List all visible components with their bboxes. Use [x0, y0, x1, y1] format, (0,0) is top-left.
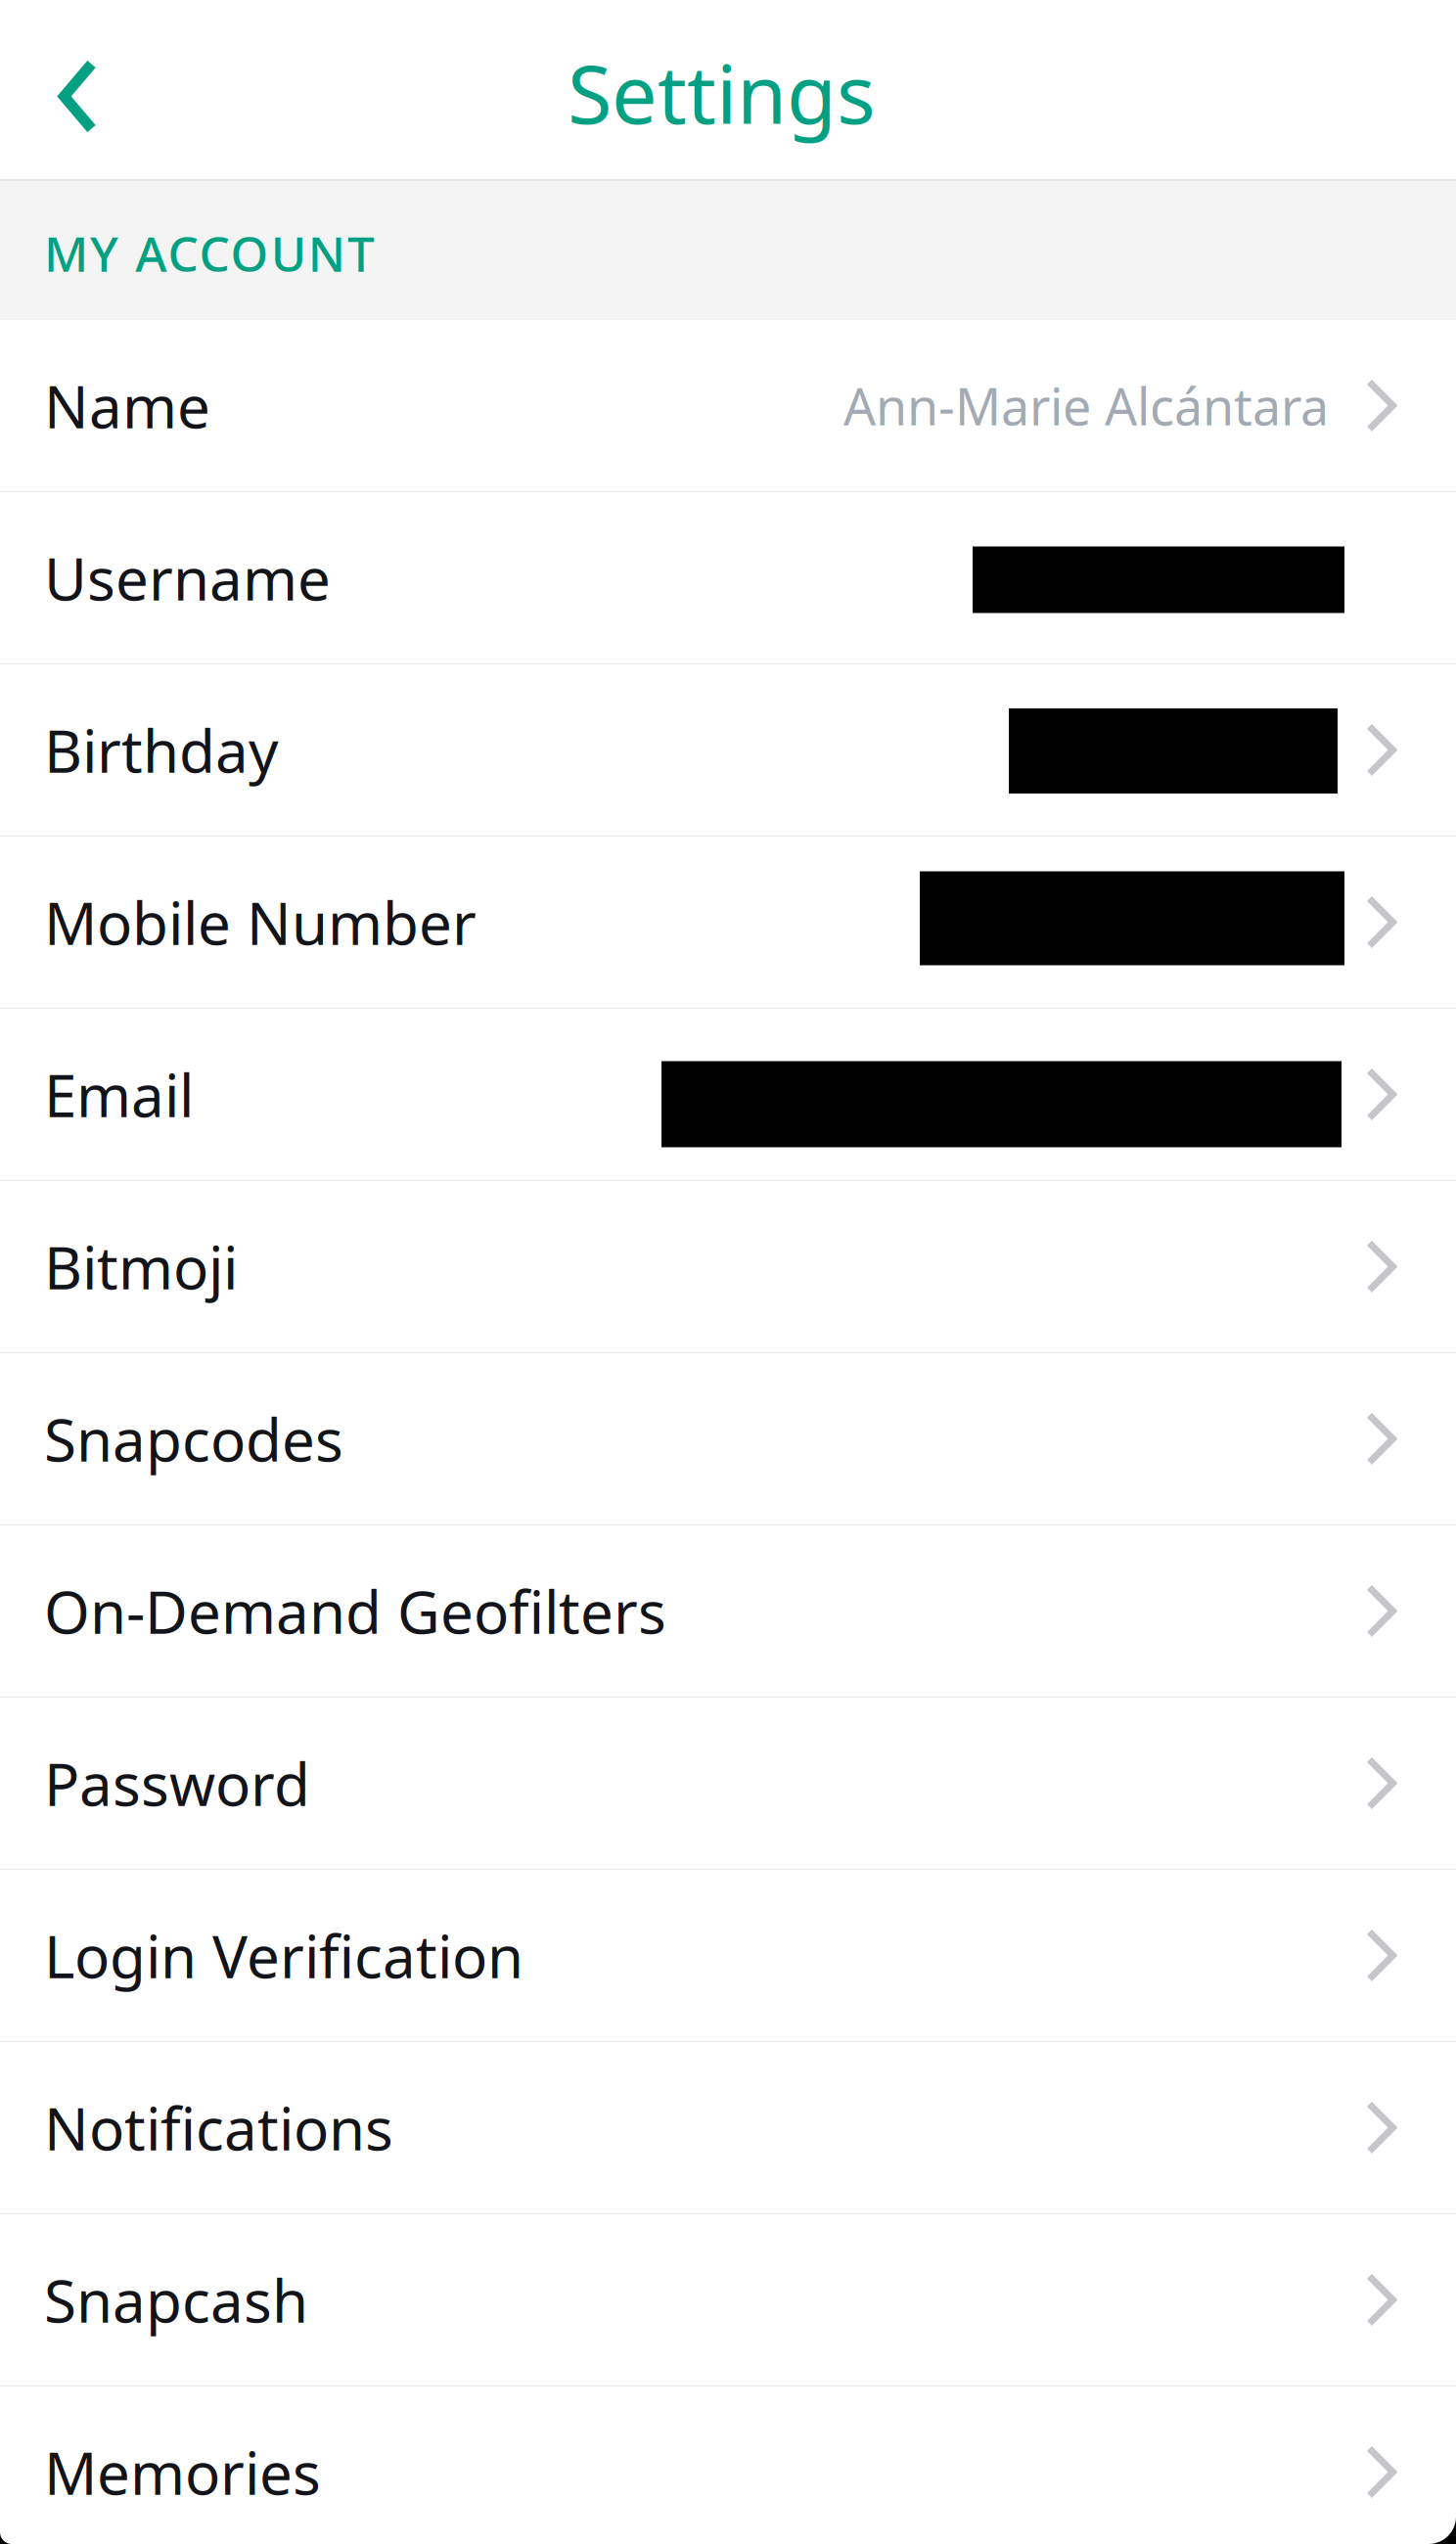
button[interactable]: Password	[0, 1698, 1456, 1870]
staticText: Memories	[44, 2433, 321, 2511]
staticText: Notifications	[44, 2089, 393, 2167]
button[interactable]: Name	[0, 320, 1456, 492]
button[interactable]: Email	[0, 1009, 1456, 1181]
button[interactable]: Memories	[0, 2386, 1456, 2544]
button[interactable]: Snapcash	[0, 2214, 1456, 2386]
staticText: Mobile Number	[44, 883, 477, 961]
staticText: Ann-Marie Alcántara	[843, 372, 1329, 439]
staticText: On-Demand Geofilters	[44, 1572, 666, 1650]
staticText: Email	[44, 1055, 194, 1133]
button[interactable]: On-Demand Geofilters	[0, 1525, 1456, 1698]
button[interactable]: Username	[0, 492, 1456, 664]
staticText: Username	[44, 539, 331, 617]
button[interactable]: Back	[0, 29, 126, 150]
staticText: MY ACCOUNT	[44, 221, 375, 285]
staticText: Password	[44, 1744, 310, 1822]
staticText: Settings	[568, 39, 876, 146]
button[interactable]: Mobile Number	[0, 837, 1456, 1009]
button[interactable]: Bitmoji	[0, 1181, 1456, 1353]
button[interactable]: Notifications	[0, 2042, 1456, 2214]
staticText: Bitmoji	[44, 1228, 238, 1306]
button[interactable]: Snapcodes	[0, 1353, 1456, 1525]
staticText: Birthday	[44, 711, 279, 789]
button[interactable]: Birthday	[0, 664, 1456, 837]
staticText: Snapcodes	[44, 1400, 343, 1478]
button[interactable]: Login Verification	[0, 1870, 1456, 2042]
staticText: Snapcash	[44, 2261, 308, 2339]
staticText: Name	[44, 367, 210, 445]
staticText: Login Verification	[44, 1917, 523, 1994]
